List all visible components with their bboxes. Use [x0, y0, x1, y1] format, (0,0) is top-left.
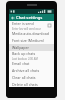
button[interactable]: Font size (Medium) [9, 37, 54, 44]
staticText: Media auto-download [12, 31, 49, 36]
staticText: Email chat [12, 61, 30, 66]
staticText: Enter is send [12, 21, 34, 26]
button[interactable]: Media auto-download [9, 30, 54, 37]
button[interactable]: Toggle enter is send [47, 23, 52, 28]
button[interactable]: Archive all chats [9, 67, 54, 74]
button[interactable]: Enter is send [9, 21, 54, 30]
staticText: Chat settings [16, 15, 43, 21]
staticText: Archive all chats [12, 68, 40, 73]
button[interactable]: Wallpaper [9, 44, 54, 51]
button[interactable]: Delete all chats [9, 81, 54, 87]
button[interactable]: Navigate up [9, 14, 16, 21]
staticText: Enter key will send your message [12, 27, 47, 30]
button[interactable]: Back up chats [9, 51, 54, 60]
button[interactable]: Clear all chats [9, 74, 54, 81]
staticText: Delete all chats [12, 82, 38, 87]
staticText: Back up chats [12, 51, 36, 56]
staticText: Font size (Medium) [12, 38, 44, 43]
staticText: Wallpaper [12, 45, 30, 50]
button[interactable]: Email chat [9, 60, 54, 67]
staticText: Last backup: 2:00 AM [12, 57, 38, 60]
staticText: Clear all chats [12, 75, 36, 80]
